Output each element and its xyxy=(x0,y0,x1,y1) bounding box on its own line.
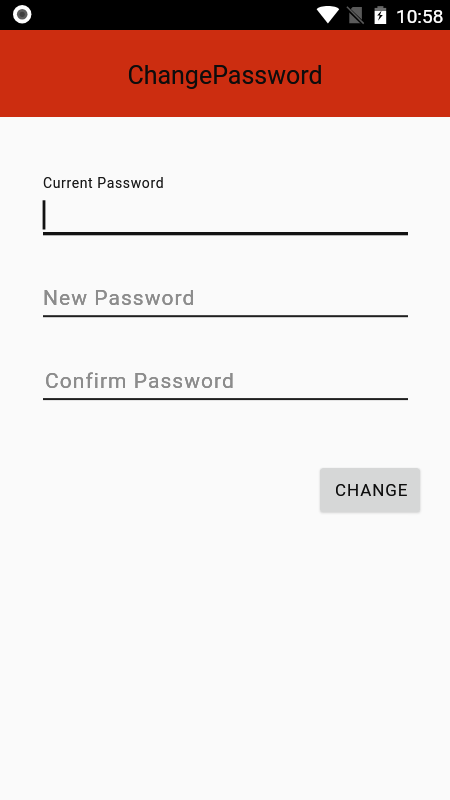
button[interactable]: Confirm Password xyxy=(38,360,413,405)
button[interactable]: New Password xyxy=(38,277,413,322)
other: Status bar icons xyxy=(0,0,450,30)
staticText: ChangePassword xyxy=(127,61,323,90)
staticText: CHANGE xyxy=(335,480,409,500)
staticText: Current Password xyxy=(43,175,165,191)
staticText: Confirm Password xyxy=(45,369,235,394)
staticText: CHANGE xyxy=(335,480,409,500)
button[interactable]: Current Password xyxy=(38,167,178,193)
staticText: New Password xyxy=(43,286,196,311)
staticText: New Password xyxy=(43,286,196,311)
staticText: Confirm Password xyxy=(45,369,235,394)
staticText: ChangePassword xyxy=(127,61,323,90)
staticText: 10:58 xyxy=(396,5,444,27)
button[interactable]: CHANGE xyxy=(320,468,420,512)
staticText: Current Password xyxy=(43,175,165,191)
